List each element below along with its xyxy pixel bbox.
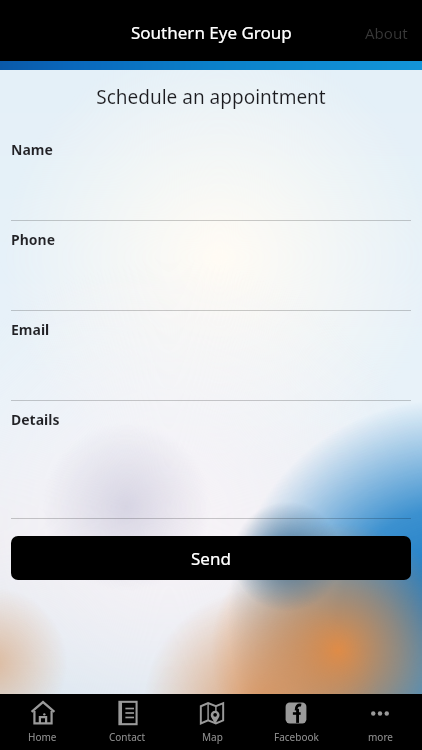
staticText: Contact	[109, 730, 146, 744]
button[interactable]: Details	[0, 401, 422, 519]
button[interactable]: Phone	[0, 221, 422, 311]
staticText: Home	[28, 730, 57, 744]
button[interactable]: Name	[0, 131, 422, 221]
button[interactable]: Email	[0, 311, 422, 401]
staticText: Facebook	[274, 730, 319, 744]
staticText: Email	[11, 320, 50, 339]
staticText: more	[368, 730, 393, 744]
button[interactable]: Send	[11, 536, 411, 580]
staticText: Send	[191, 547, 231, 570]
staticText: About	[365, 23, 408, 43]
staticText: Phone	[11, 230, 56, 249]
button[interactable]: Contact	[85, 694, 170, 750]
staticText: Details	[11, 410, 60, 429]
button[interactable]: Home	[0, 694, 85, 750]
button[interactable]: Facebook	[254, 694, 338, 750]
staticText: Southern Eye Group	[131, 21, 292, 44]
staticText: Schedule an appointment	[0, 84, 422, 110]
button[interactable]: About	[351, 13, 422, 53]
button[interactable]: Map	[170, 694, 254, 750]
staticText: Name	[11, 140, 53, 159]
button[interactable]: more	[338, 694, 422, 750]
staticText: Map	[202, 730, 223, 744]
